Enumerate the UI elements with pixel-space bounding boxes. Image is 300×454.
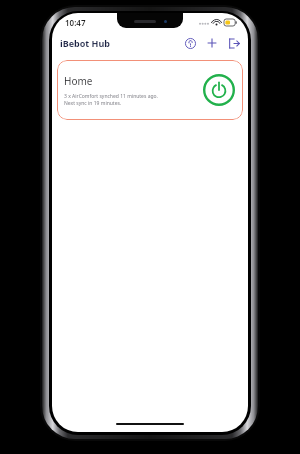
staticText: 3 x AirComfort synched 11 minutes ago.: [64, 93, 158, 100]
staticText: 10:47: [65, 17, 86, 28]
staticText: iBebot Hub: [60, 37, 111, 49]
button[interactable]: Sign out: [223, 32, 245, 54]
button[interactable]: Power: [202, 73, 236, 107]
button[interactable]: Home: [57, 60, 243, 120]
staticText: Next sync in 19 minutes.: [64, 100, 122, 107]
button[interactable]: Add: [201, 32, 223, 54]
staticText: Home: [64, 74, 93, 88]
button[interactable]: Help: [179, 32, 201, 54]
